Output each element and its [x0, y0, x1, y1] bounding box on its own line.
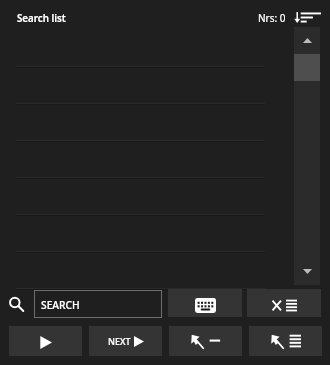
button[interactable]: Select list	[249, 326, 322, 356]
staticText: Search list	[17, 12, 66, 25]
staticText: SEARCH	[41, 298, 80, 312]
button[interactable]: Search	[3, 291, 29, 317]
staticText: Nrs: 0	[258, 11, 286, 25]
button[interactable]: Scroll up	[294, 27, 320, 54]
button[interactable]: NEXT	[89, 326, 162, 356]
button[interactable]: SEARCH	[34, 290, 162, 318]
button[interactable]: Keyboard	[168, 289, 242, 317]
button[interactable]: Select minus	[169, 326, 242, 356]
button[interactable]: Play	[9, 326, 82, 356]
button[interactable]: Sort	[291, 6, 324, 29]
staticText: NEXT	[108, 335, 131, 347]
button[interactable]: Clear list	[247, 289, 321, 317]
button[interactable]: Scroll down	[294, 258, 320, 285]
